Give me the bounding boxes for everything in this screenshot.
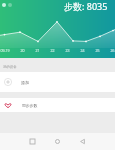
button[interactable]: 同步步数 xyxy=(0,98,115,112)
staticText: 09-19 xyxy=(0,48,10,53)
staticText: 25 xyxy=(95,48,100,53)
staticText: 我的设备 xyxy=(3,65,17,69)
staticText: 步数: 8035 xyxy=(64,0,108,12)
staticText: 24 xyxy=(80,48,85,53)
staticText: 同步步数 xyxy=(22,103,38,108)
staticText: 添加 xyxy=(21,80,29,85)
button[interactable]: Back xyxy=(72,133,92,150)
staticText: 23 xyxy=(65,48,70,53)
staticText: 21 xyxy=(35,48,40,53)
button[interactable]: 添加 xyxy=(0,72,115,92)
staticText: 22 xyxy=(50,48,55,53)
staticText: 26 xyxy=(110,48,115,53)
staticText: 20 xyxy=(20,48,25,53)
button[interactable]: Home xyxy=(47,133,67,150)
button[interactable]: Recents xyxy=(22,133,42,150)
